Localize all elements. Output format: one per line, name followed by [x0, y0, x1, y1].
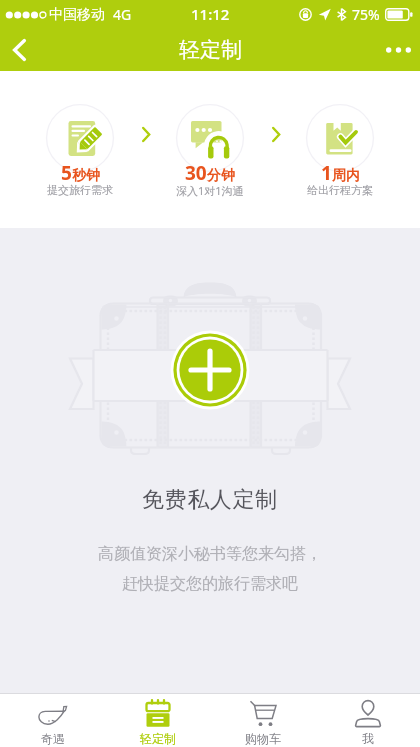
- button[interactable]: 5: [15, 71, 145, 228]
- button[interactable]: 轻定制: [105, 693, 210, 747]
- staticText: 中国移动: [49, 6, 105, 24]
- staticText: 分钟: [207, 167, 235, 185]
- button[interactable]: More options: [372, 28, 420, 71]
- button[interactable]: 1: [275, 71, 405, 228]
- staticText: 1: [321, 160, 332, 186]
- button[interactable]: 购物车: [210, 693, 315, 747]
- button[interactable]: 我: [315, 693, 420, 747]
- staticText: 75%: [352, 5, 380, 24]
- staticText: 给出行程方案: [307, 183, 373, 197]
- staticText: 轻定制: [140, 731, 176, 746]
- button[interactable]: Create a custom trip: [170, 330, 250, 410]
- staticText: 11:12: [191, 4, 230, 24]
- staticText: 深入1对1沟通: [176, 183, 244, 198]
- button[interactable]: 30: [145, 71, 275, 228]
- staticText: 秒钟: [72, 167, 100, 185]
- staticText: 4G: [113, 5, 132, 24]
- staticText: 轻定制: [179, 37, 242, 63]
- staticText: 奇遇: [41, 731, 65, 746]
- staticText: 高颜值资深小秘书等您来勾搭， 赶快提交您的旅行需求吧: [98, 544, 322, 593]
- button[interactable]: Back: [0, 28, 44, 71]
- staticText: 30: [185, 160, 207, 186]
- staticText: 周内: [332, 167, 360, 185]
- staticText: 我: [362, 731, 374, 746]
- staticText: 提交旅行需求: [47, 183, 113, 197]
- staticText: 5: [61, 160, 72, 186]
- button[interactable]: 奇遇: [0, 693, 105, 747]
- staticText: 免费私人定制: [142, 486, 278, 514]
- staticText: 购物车: [245, 731, 281, 746]
